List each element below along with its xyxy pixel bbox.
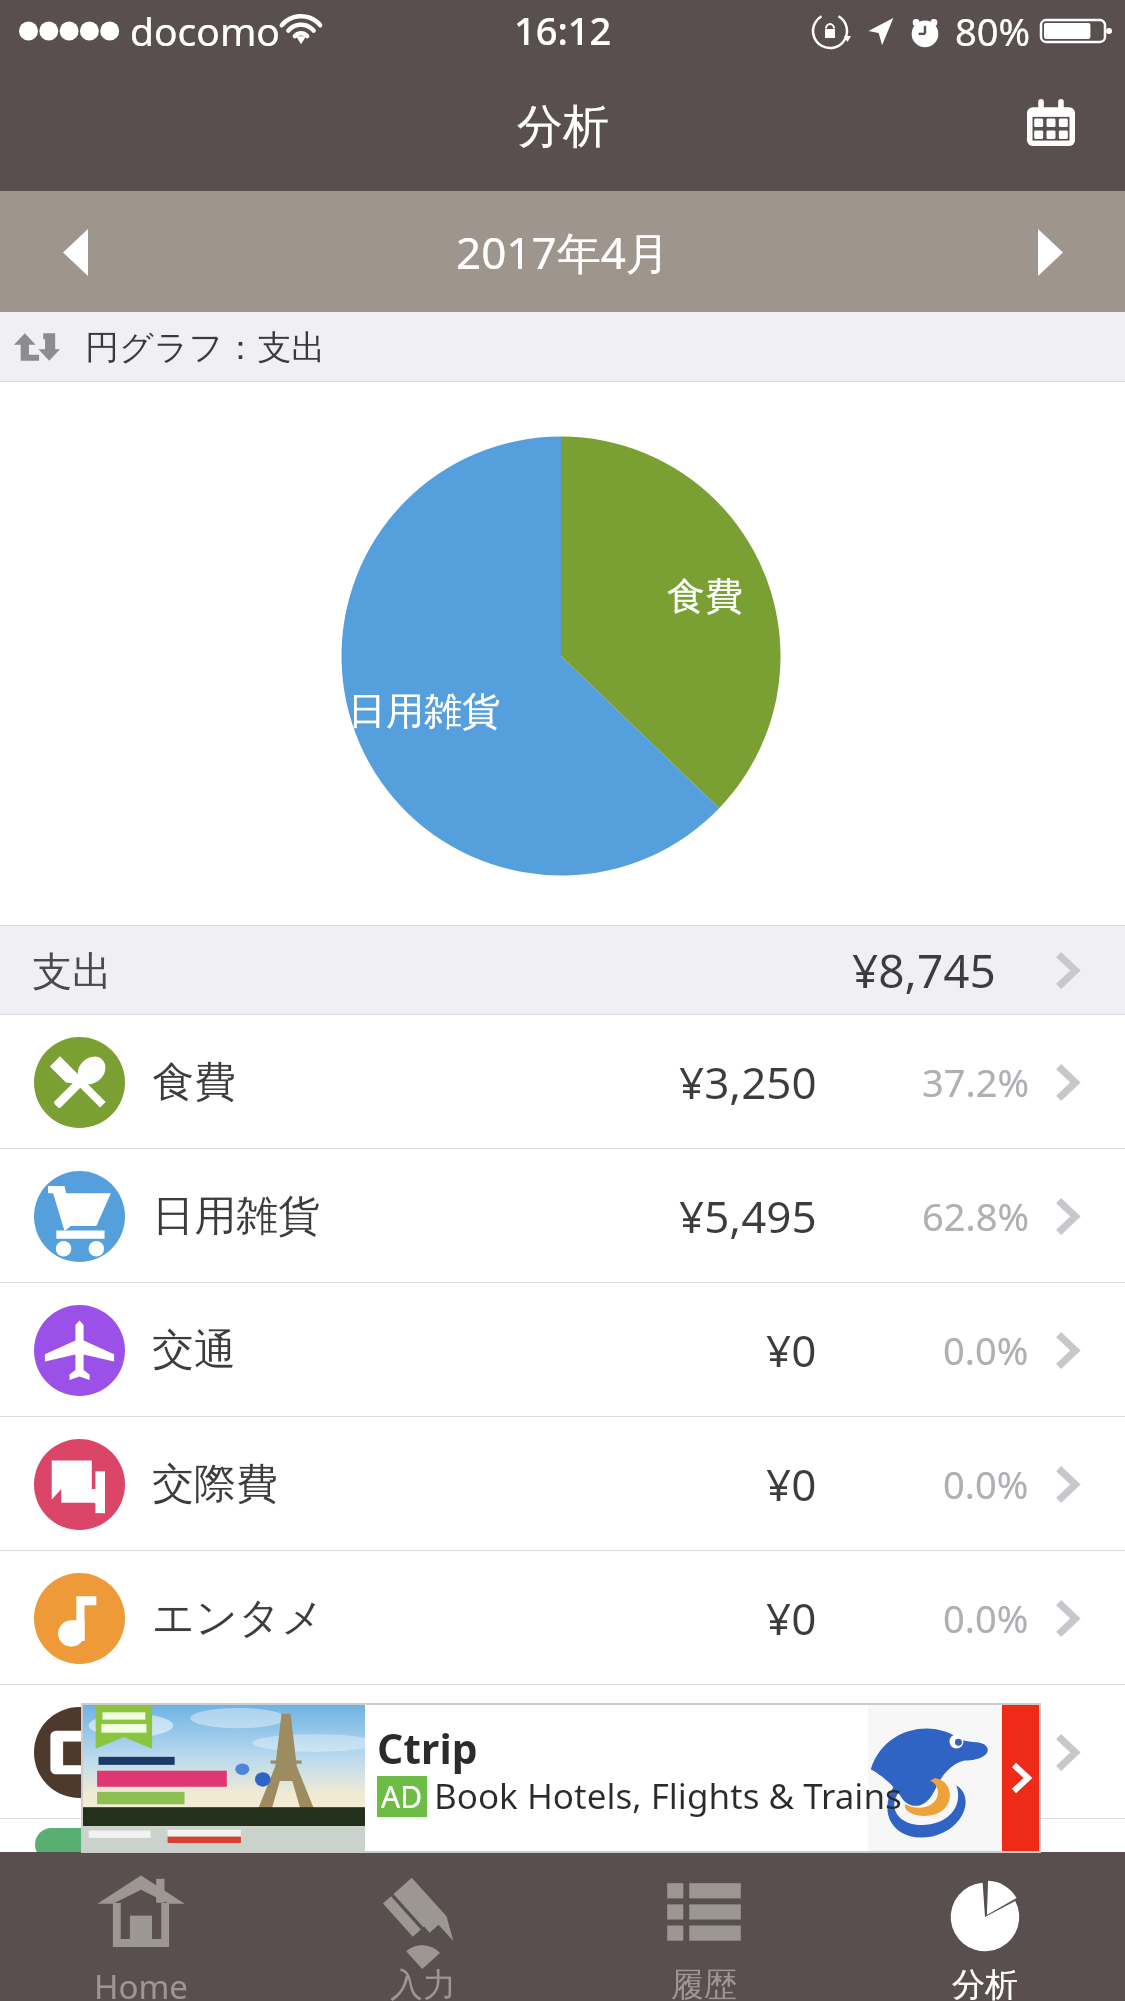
staticText: ¥0 bbox=[766, 1320, 817, 1380]
button[interactable]: Previous month bbox=[40, 217, 110, 287]
button[interactable]: 分析 bbox=[844, 1852, 1125, 2001]
button[interactable]: エンタメ bbox=[0, 1551, 1125, 1685]
staticText: Home bbox=[94, 1964, 188, 2001]
staticText: 入力 bbox=[390, 1964, 456, 2001]
button[interactable]: Next month bbox=[1015, 217, 1085, 287]
button[interactable]: Home bbox=[0, 1852, 282, 2001]
staticText: Ctrip bbox=[377, 1720, 478, 1776]
staticText: 62.8% bbox=[922, 1190, 1029, 1242]
staticText: ¥8,745 bbox=[852, 939, 996, 1002]
button[interactable]: 円グラフ：支出 bbox=[0, 312, 1125, 382]
button[interactable]: 食費 bbox=[0, 1015, 1125, 1149]
staticText: 0.0% bbox=[943, 1592, 1029, 1644]
staticText: 食費 bbox=[667, 572, 743, 620]
staticText: AD bbox=[381, 1776, 423, 1817]
staticText: 交際費 bbox=[152, 1458, 278, 1511]
staticText: 16:12 bbox=[514, 4, 612, 56]
staticText: ¥5,495 bbox=[679, 1186, 817, 1246]
staticText: 2017年4月 bbox=[456, 222, 670, 282]
button[interactable] bbox=[0, 1685, 1125, 1819]
staticText: 交通 bbox=[152, 1324, 236, 1377]
staticText: 分析 bbox=[517, 98, 609, 156]
staticText: 食費 bbox=[152, 1056, 236, 1109]
button[interactable]: Ctrip bbox=[81, 1703, 1041, 1853]
button[interactable]: Calendar bbox=[1011, 82, 1091, 162]
button[interactable]: 交通 bbox=[0, 1283, 1125, 1417]
staticText: 0.0% bbox=[943, 1324, 1029, 1376]
staticText: 日用雑貨 bbox=[348, 687, 500, 735]
staticText: 日用雑貨 bbox=[152, 1190, 320, 1243]
button[interactable]: 支出 bbox=[0, 926, 1125, 1015]
staticText: 支出 bbox=[32, 946, 112, 996]
staticText: Book Hotels, Flights & Trains bbox=[434, 1772, 902, 1820]
staticText: 80% bbox=[955, 5, 1031, 57]
staticText: 0.0% bbox=[943, 1458, 1029, 1510]
staticText: ¥0 bbox=[766, 1454, 817, 1514]
staticText: 37.2% bbox=[922, 1056, 1029, 1108]
staticText: 履歴 bbox=[671, 1964, 737, 2001]
staticText: ¥3,250 bbox=[679, 1052, 817, 1112]
button[interactable]: 交際費 bbox=[0, 1417, 1125, 1551]
button[interactable]: 入力 bbox=[282, 1852, 563, 2001]
button[interactable]: 履歴 bbox=[563, 1852, 844, 2001]
staticText: 円グラフ：支出 bbox=[85, 326, 326, 369]
staticText: ¥0 bbox=[766, 1588, 817, 1648]
button[interactable]: 日用雑貨 bbox=[0, 1149, 1125, 1283]
staticText: 分析 bbox=[952, 1964, 1018, 2001]
staticText: エンタメ bbox=[152, 1592, 324, 1645]
staticText: docomo bbox=[130, 4, 280, 57]
